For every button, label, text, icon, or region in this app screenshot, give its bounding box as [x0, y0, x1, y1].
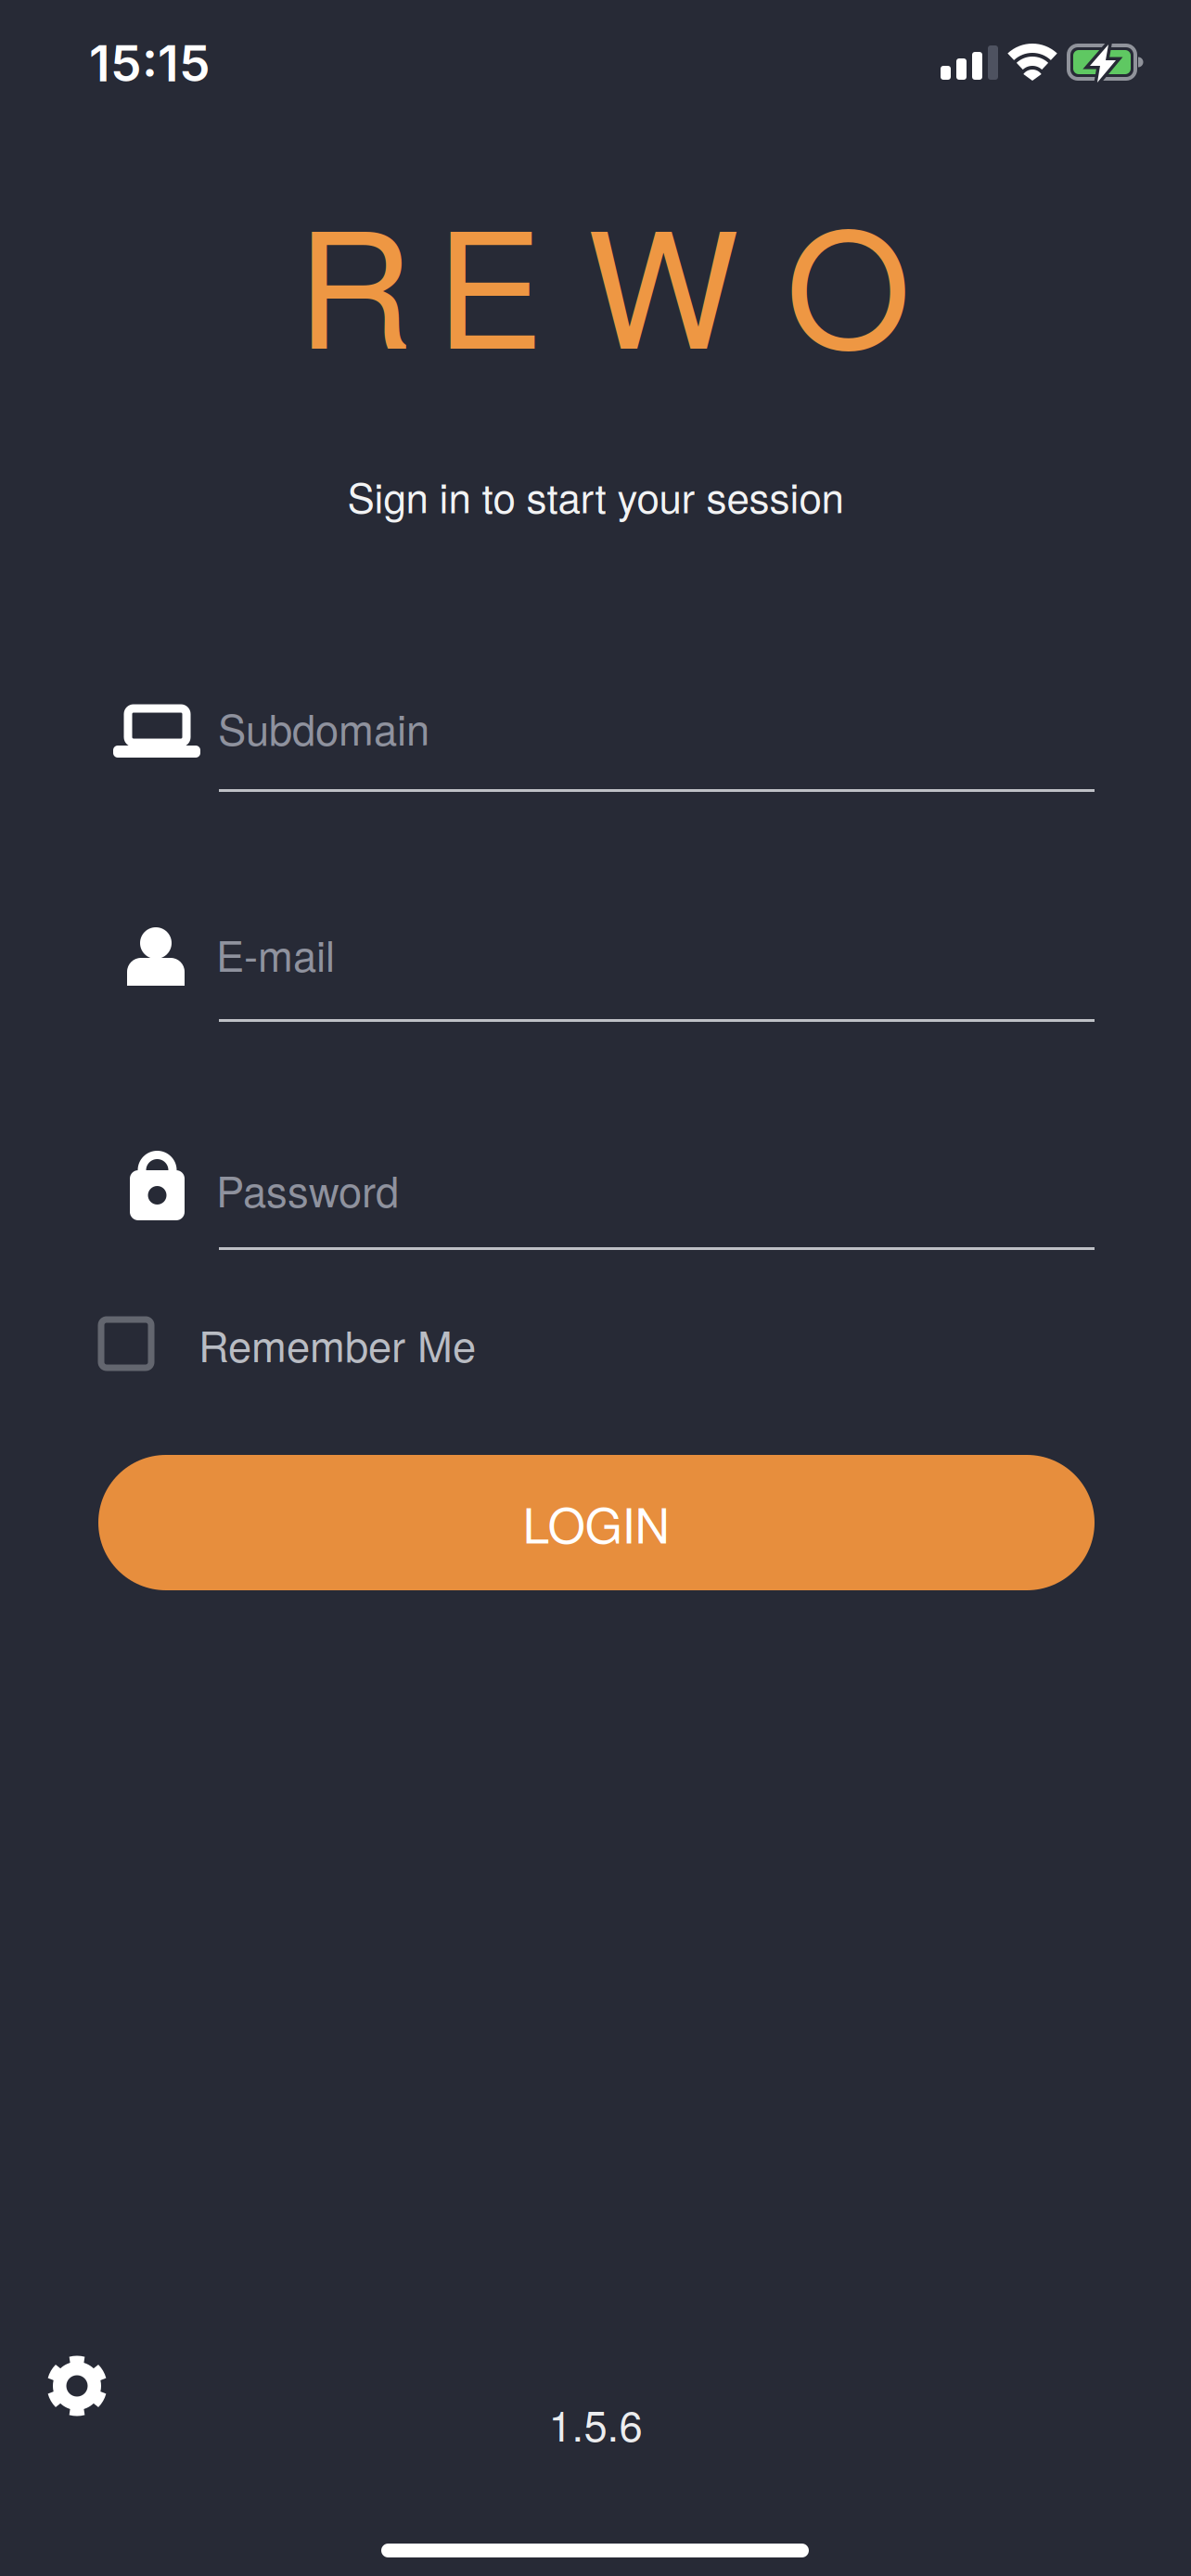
staticText: Subdomain	[218, 697, 429, 757]
staticText: W	[587, 164, 739, 394]
staticText: E	[436, 164, 544, 394]
staticText: R	[297, 164, 413, 394]
button[interactable]: Password	[0, 1148, 1095, 1259]
staticText: 15:15	[89, 33, 211, 93]
staticText: E-mail	[216, 924, 335, 984]
staticText: Password	[216, 1159, 399, 1219]
button[interactable]: Settings	[46, 2355, 108, 2417]
button[interactable]: Subdomain	[0, 700, 1095, 811]
staticText: 1.5.6	[549, 2393, 642, 2454]
button[interactable]: E-mail	[0, 927, 1095, 1039]
staticText: Sign in to start your session	[347, 466, 844, 525]
button[interactable]: LOGIN	[98, 1455, 1095, 1590]
staticText: Remember Me	[198, 1314, 476, 1374]
staticText: O	[786, 164, 911, 394]
staticText: LOGIN	[523, 1488, 670, 1557]
button[interactable]: Remember Me	[0, 1313, 557, 1378]
